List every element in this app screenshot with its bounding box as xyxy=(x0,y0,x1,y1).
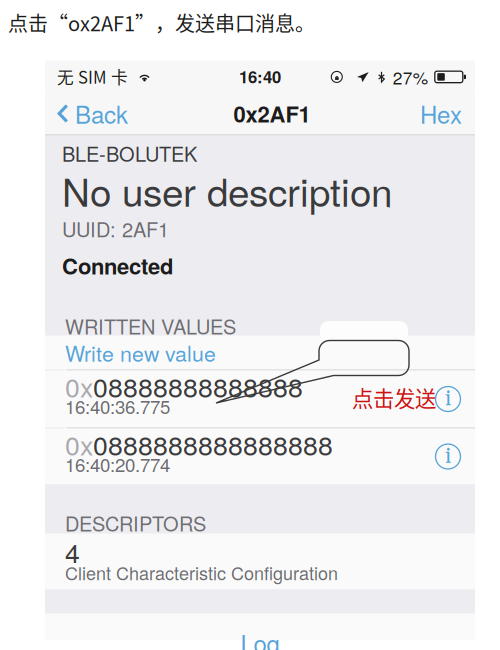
staticText: UUID: 2AF1 xyxy=(62,214,169,243)
staticText: 0x2AF1 xyxy=(233,98,310,129)
staticText: Connected xyxy=(62,250,173,281)
staticText: Log xyxy=(240,625,279,650)
staticText: 16:40:20.774 xyxy=(65,451,170,477)
staticText: 点击发送 xyxy=(352,382,436,413)
staticText: DESCRIPTORS xyxy=(65,508,206,537)
staticText: Hex xyxy=(420,96,462,131)
staticText: 16:40:36.775 xyxy=(65,393,170,419)
staticText: WRITTEN VALUES xyxy=(65,311,236,340)
staticText: 0888888888888888 xyxy=(93,425,333,463)
staticText: Client Characteristic Configuration xyxy=(65,560,338,585)
staticText: 无 SIM 卡 xyxy=(57,64,128,89)
button[interactable]: 0x xyxy=(45,370,475,427)
button[interactable]: 0x xyxy=(45,428,475,484)
staticText: i xyxy=(445,385,451,413)
staticText: Write new value xyxy=(65,337,216,368)
button[interactable]: More info xyxy=(431,439,465,473)
button[interactable]: Write new value xyxy=(45,335,475,369)
button[interactable]: More info xyxy=(431,382,465,416)
button[interactable]: Back xyxy=(45,92,138,134)
button[interactable]: Hex xyxy=(406,92,475,134)
staticText: 0x xyxy=(65,367,93,405)
staticText: BLE-BOLUTEK xyxy=(62,139,197,167)
staticText: No user description xyxy=(62,162,392,218)
staticText: 08888888888888 xyxy=(93,367,303,405)
staticText: 0x xyxy=(65,425,93,463)
staticText: 27% xyxy=(393,64,428,89)
button[interactable]: 4 xyxy=(45,533,475,589)
staticText: Back xyxy=(75,96,128,131)
staticText: 4 xyxy=(65,532,80,571)
button[interactable]: Log xyxy=(45,613,475,639)
staticText: i xyxy=(445,443,451,470)
staticText: 16:40 xyxy=(239,64,281,88)
staticText: 点击“ox2AF1”，发送串口消息。 xyxy=(8,8,315,37)
